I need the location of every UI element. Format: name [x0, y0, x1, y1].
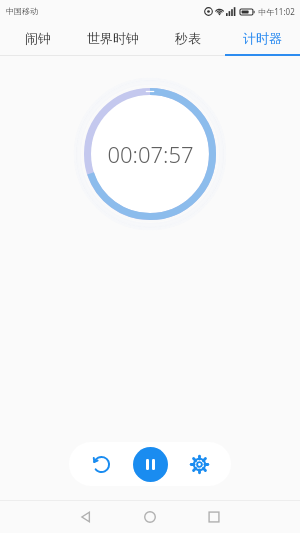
- button[interactable]: 秒表: [150, 22, 225, 54]
- button[interactable]: Pause: [133, 447, 168, 482]
- button[interactable]: 计时器: [225, 22, 300, 54]
- staticText: 00:07:57: [107, 139, 194, 169]
- button[interactable]: 闹钟: [0, 22, 75, 54]
- button[interactable]: Back: [54, 500, 118, 533]
- button[interactable]: Recents: [182, 500, 246, 533]
- staticText: 中午11:02: [258, 6, 295, 17]
- button[interactable]: Settings: [179, 444, 219, 484]
- staticText: 计时器: [243, 30, 282, 46]
- button[interactable]: Reset: [81, 444, 121, 484]
- staticText: 世界时钟: [87, 30, 139, 46]
- staticText: 闹钟: [25, 30, 51, 46]
- staticText: 中国移动: [6, 6, 38, 16]
- button[interactable]: Home: [118, 500, 182, 533]
- button[interactable]: 世界时钟: [75, 22, 150, 54]
- staticText: 秒表: [175, 30, 201, 46]
